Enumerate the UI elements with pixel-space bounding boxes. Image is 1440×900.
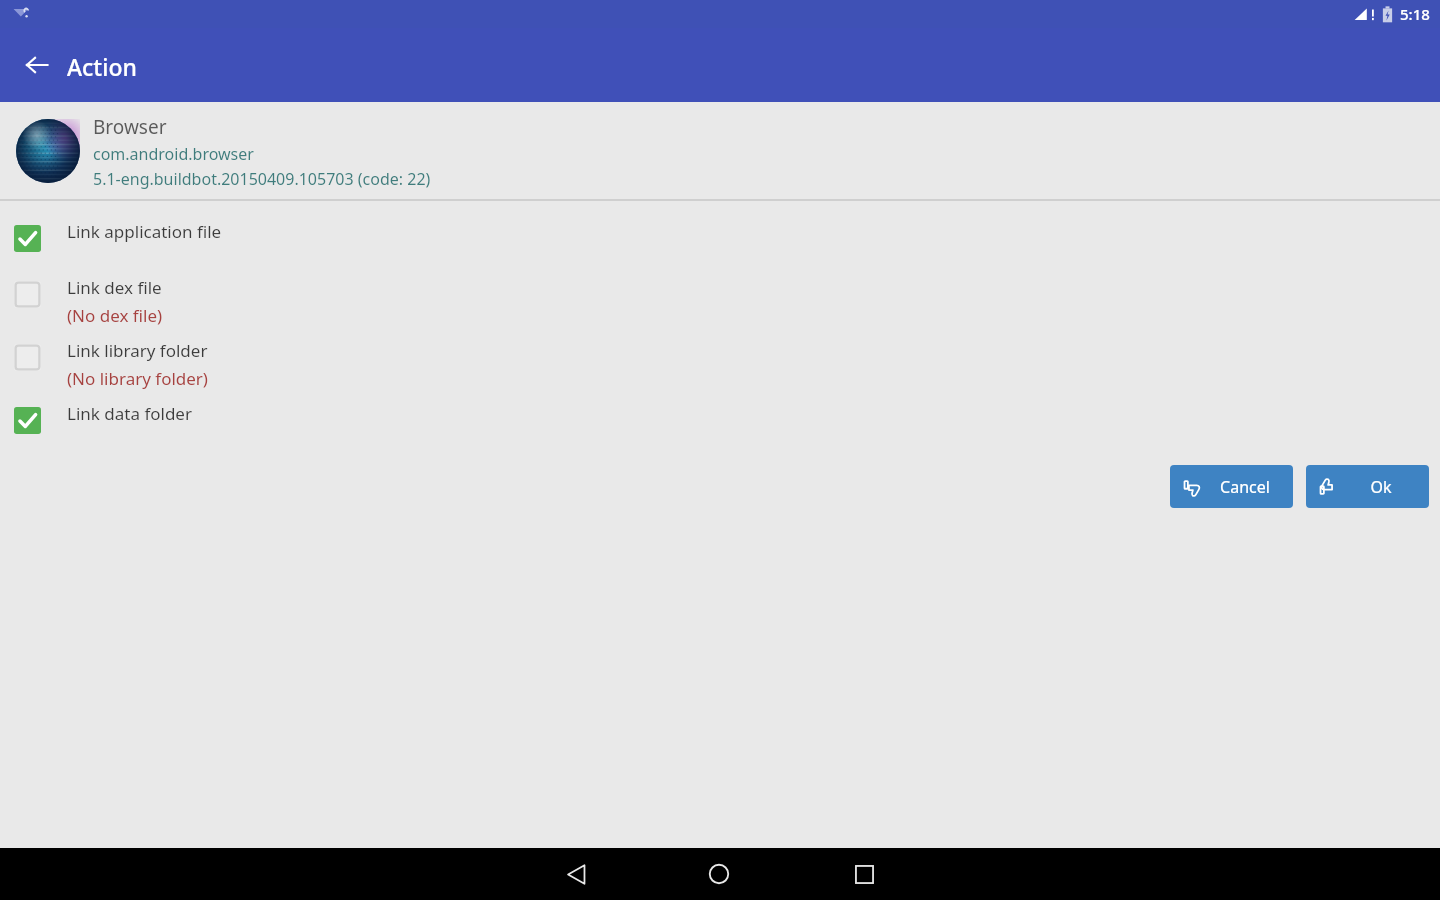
button[interactable]: Home xyxy=(691,848,747,900)
staticText: Link library folder xyxy=(67,339,208,362)
button[interactable]: Back xyxy=(548,848,604,900)
button[interactable]: Link application file xyxy=(0,222,1440,251)
button[interactable]: Link library folder xyxy=(0,341,1440,394)
staticText: 5:18 xyxy=(1400,4,1430,24)
button[interactable]: Link dex file xyxy=(0,278,1440,331)
staticText: Link data folder xyxy=(67,402,192,425)
button[interactable]: Ok xyxy=(1306,465,1429,508)
button[interactable]: Recent apps xyxy=(836,848,892,900)
staticText: Browser xyxy=(93,114,167,140)
staticText: (No dex file) xyxy=(67,304,163,327)
button[interactable]: Browser xyxy=(0,102,1440,199)
button[interactable]: Link data folder xyxy=(0,404,1440,433)
staticText: (No library folder) xyxy=(67,367,208,390)
staticText: Cancel xyxy=(1220,476,1270,498)
staticText: 5.1-eng.buildbot.20150409.105703 (code: … xyxy=(93,168,431,190)
button[interactable]: Cancel xyxy=(1170,465,1293,508)
button[interactable]: Back xyxy=(14,42,60,88)
staticText: Action xyxy=(67,51,137,82)
staticText: Link dex file xyxy=(67,276,162,299)
staticText: com.android.browser xyxy=(93,143,254,165)
staticText: Ok xyxy=(1370,476,1392,498)
staticText: Link application file xyxy=(67,220,222,243)
